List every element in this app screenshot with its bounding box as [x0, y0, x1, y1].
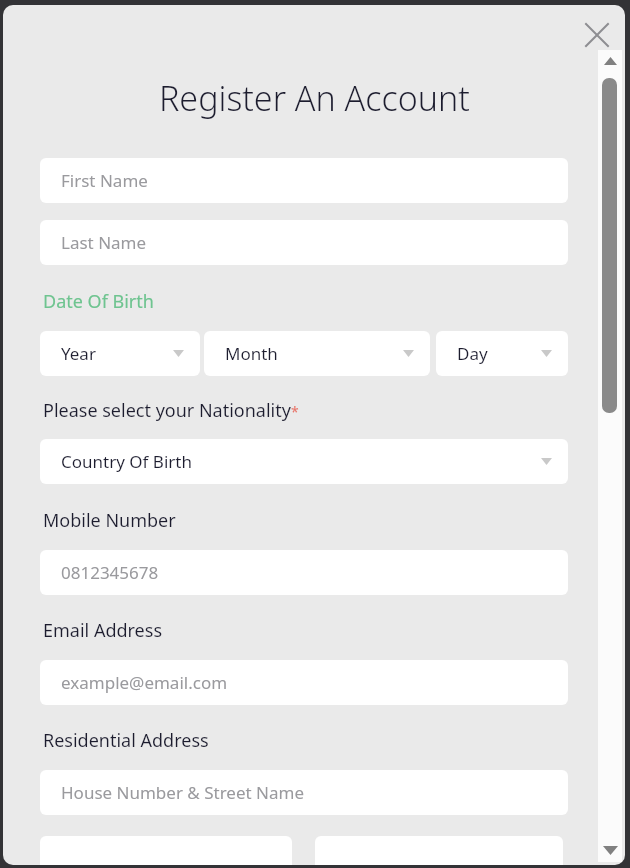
- button[interactable]: 0812345678: [40, 550, 568, 595]
- staticText: Register An Account: [159, 75, 470, 121]
- staticText: Mobile Number: [43, 508, 176, 533]
- staticText: Country Of Birth: [61, 450, 192, 473]
- staticText: Day: [457, 342, 488, 365]
- staticText: example@email.com: [61, 671, 228, 694]
- staticText: First Name: [61, 169, 148, 192]
- staticText: Last Name: [61, 231, 147, 254]
- button[interactable]: [602, 78, 617, 413]
- staticText: Residential Address: [43, 728, 209, 753]
- staticText: Date Of Birth: [43, 289, 154, 314]
- staticText: House Number & Street Name: [61, 781, 305, 804]
- button[interactable]: Scroll down: [598, 838, 622, 862]
- button[interactable]: Year: [40, 331, 200, 376]
- staticText: 0812345678: [61, 561, 159, 584]
- button[interactable]: Country Of Birth: [40, 439, 568, 484]
- button[interactable]: Scroll up: [598, 50, 622, 72]
- button[interactable]: First Name: [40, 158, 568, 203]
- staticText: Year: [61, 342, 96, 365]
- button[interactable]: House Number & Street Name: [40, 770, 568, 815]
- button[interactable]: Close: [576, 14, 618, 56]
- staticText: Email Address: [43, 618, 163, 643]
- button[interactable]: example@email.com: [40, 660, 568, 705]
- button[interactable]: Last Name: [40, 220, 568, 265]
- staticText: Month: [225, 342, 278, 365]
- staticText: Please select your Nationality*: [43, 398, 299, 423]
- button[interactable]: Day: [436, 331, 568, 376]
- button[interactable]: Month: [204, 331, 430, 376]
